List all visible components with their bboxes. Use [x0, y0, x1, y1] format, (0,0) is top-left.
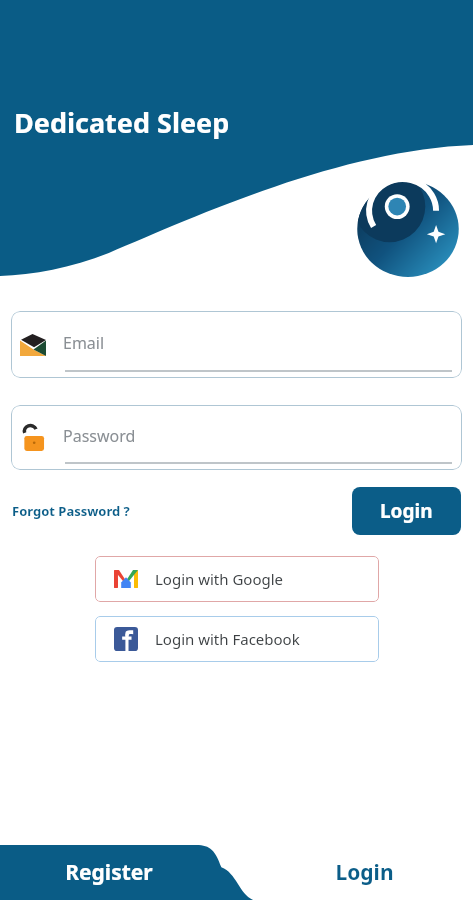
button[interactable]: Forgot Password ? [11, 499, 131, 523]
button[interactable]: Login with Facebook [95, 616, 379, 662]
staticText: Login [335, 858, 394, 887]
staticText: Login with Google [155, 569, 284, 589]
staticText: Email [63, 332, 105, 354]
staticText: Dedicated Sleep [14, 104, 230, 141]
button[interactable]: Login [352, 487, 461, 535]
button[interactable]: Email [11, 311, 462, 378]
staticText: Forgot Password ? [12, 502, 130, 520]
button[interactable]: Login [255, 836, 473, 900]
button[interactable]: Login with Google [95, 556, 379, 602]
staticText: Register [65, 858, 153, 887]
staticText: Login [380, 498, 433, 524]
staticText: Password [63, 425, 136, 447]
staticText: Login with Facebook [155, 629, 300, 649]
button[interactable]: Register [0, 836, 218, 900]
button[interactable]: Password [11, 405, 462, 470]
